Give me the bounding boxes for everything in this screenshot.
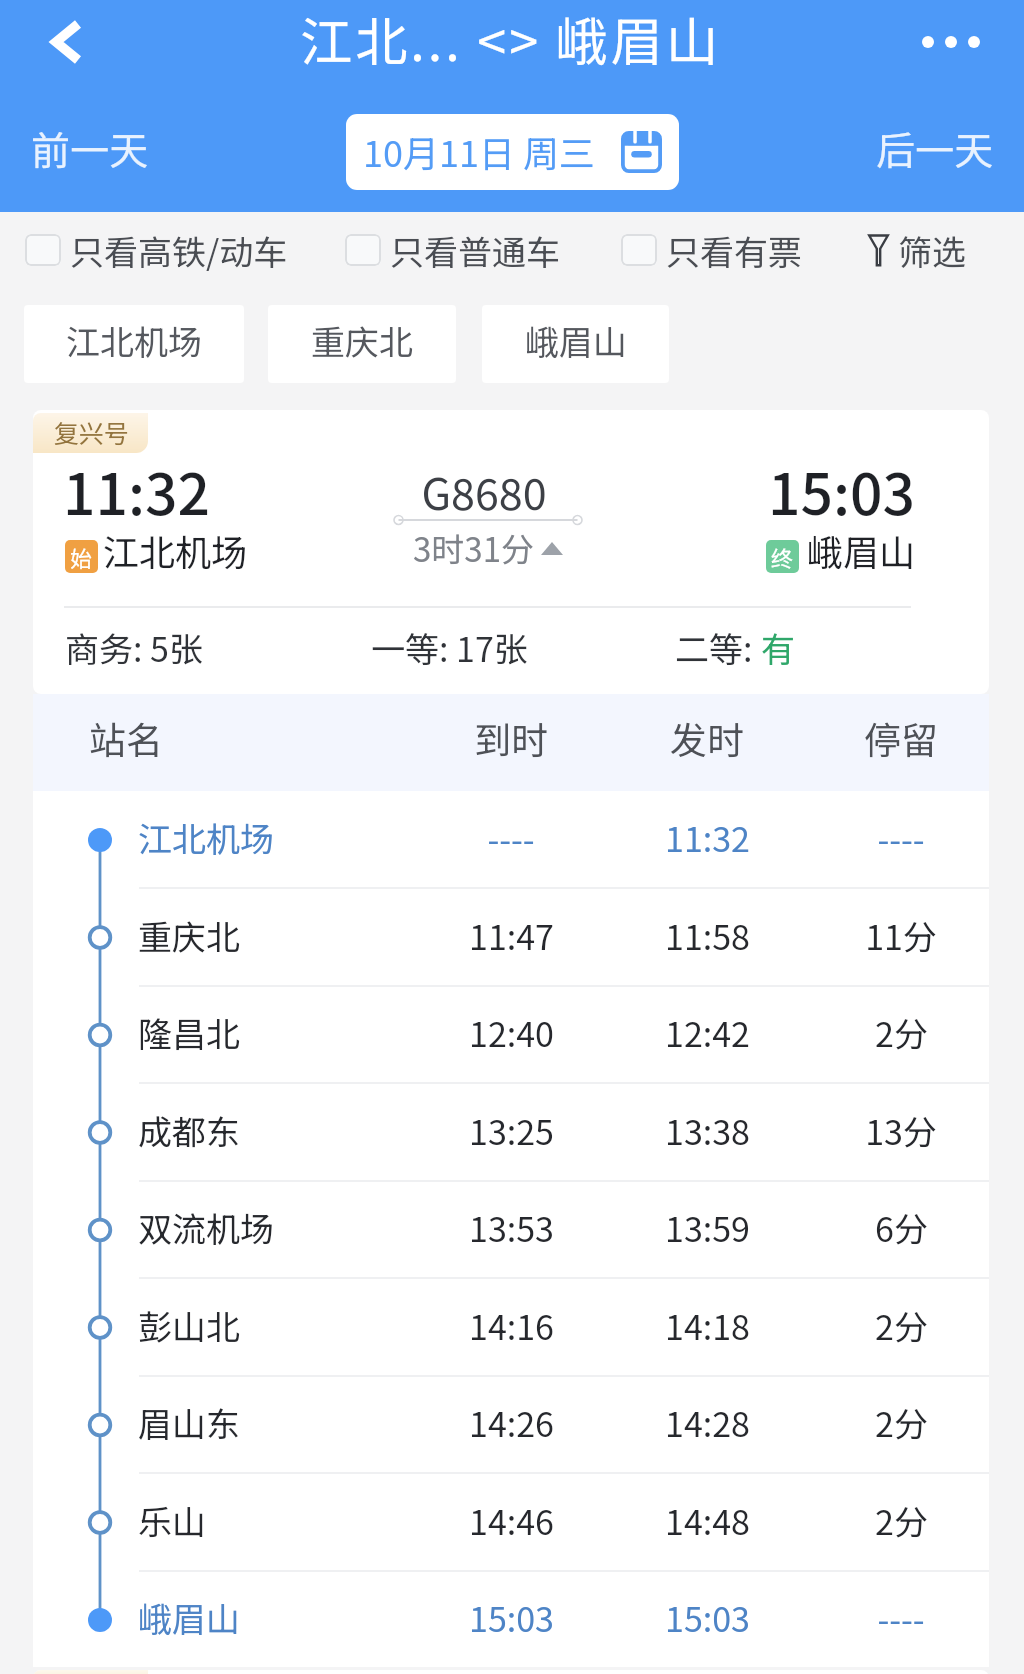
staticText: 6分 [875, 1203, 928, 1249]
staticText: 始 [70, 541, 93, 573]
staticText: 15:03 [768, 449, 915, 526]
button[interactable]: 峨眉山 [33, 1571, 989, 1668]
staticText: 13:38 [665, 1106, 750, 1152]
staticText: 13分 [865, 1106, 937, 1152]
staticText: 只看普通车 [390, 226, 560, 275]
staticText: 江北机场 [103, 524, 248, 572]
staticText: 峨眉山 [525, 316, 627, 365]
staticText: 一等: 17张 [371, 623, 528, 669]
staticText: 双流机场 [138, 1203, 274, 1249]
button[interactable]: 只看高铁/动车 [25, 213, 288, 287]
staticText: 眉山东 [138, 1398, 240, 1444]
staticText: 江北机场 [138, 813, 274, 859]
staticText: 站名 [89, 711, 163, 761]
staticText: 13:53 [469, 1203, 554, 1249]
staticText: 11:32 [63, 449, 210, 526]
staticText: 峨眉山 [807, 524, 916, 572]
staticText: 只看高铁/动车 [70, 226, 288, 275]
staticText: 复兴号 [54, 414, 130, 450]
staticText: 13:25 [469, 1106, 554, 1152]
staticText: 只看有票 [666, 226, 802, 275]
staticText: 14:46 [469, 1496, 554, 1542]
staticText: 乐山 [138, 1496, 206, 1542]
button[interactable]: More options [885, 0, 1009, 84]
staticText: 重庆北 [138, 911, 240, 957]
staticText: ---- [487, 813, 535, 859]
button[interactable]: 后一天 [876, 120, 994, 176]
button[interactable]: 前一天 [31, 120, 149, 176]
button[interactable]: 重庆北 [33, 889, 989, 986]
button[interactable]: 江北机场 [24, 305, 244, 383]
staticText: 14:26 [469, 1398, 554, 1444]
staticText: 12:40 [469, 1008, 554, 1054]
staticText: ---- [877, 1593, 925, 1639]
staticText: 2分 [875, 1008, 928, 1054]
button[interactable]: 只看普通车 [345, 213, 560, 287]
button[interactable]: 10月11日 周三 [346, 114, 679, 190]
staticText: 15:03 [665, 1593, 750, 1639]
button[interactable]: 复兴号 [33, 410, 989, 694]
button[interactable]: 成都东 [33, 1084, 989, 1181]
button[interactable]: 筛选 [868, 213, 966, 287]
staticText: 到时 [474, 711, 548, 761]
button[interactable]: 乐山 [33, 1474, 989, 1571]
staticText: 11分 [865, 911, 937, 957]
staticText: 成都东 [138, 1106, 240, 1152]
staticText: 14:16 [469, 1301, 554, 1347]
staticText: 15:03 [469, 1593, 554, 1639]
staticText: 有 [761, 623, 795, 669]
staticText: 江北机场 [66, 316, 202, 365]
staticText: 发时 [670, 711, 744, 761]
staticText: 江北... <> 峨眉山 [300, 1, 721, 71]
staticText: 3时31分 [413, 524, 534, 572]
staticText: ---- [877, 813, 925, 859]
staticText: 重庆北 [311, 316, 413, 365]
button[interactable]: 眉山东 [33, 1376, 989, 1473]
staticText: G8680 [421, 460, 547, 518]
staticText: 14:28 [665, 1398, 750, 1444]
staticText: 12:42 [665, 1008, 750, 1054]
button[interactable]: 江北机场 [33, 791, 989, 888]
staticText: 后一天 [876, 120, 994, 176]
staticText: 10月11日 周三 [363, 125, 595, 177]
staticText: 11:32 [665, 813, 750, 859]
staticText: 商务: 5张 [65, 623, 203, 669]
staticText: 14:48 [665, 1496, 750, 1542]
staticText: 11:58 [665, 911, 750, 957]
staticText: 11:47 [469, 911, 554, 957]
button[interactable]: 峨眉山 [482, 305, 669, 383]
staticText: 2分 [875, 1301, 928, 1347]
button[interactable]: Back [13, 0, 121, 84]
button[interactable]: 隆昌北 [33, 986, 989, 1083]
staticText: 2分 [875, 1398, 928, 1444]
button[interactable]: 彭山北 [33, 1279, 989, 1376]
staticText: 13:59 [665, 1203, 750, 1249]
staticText: 前一天 [31, 120, 149, 176]
staticText: 筛选 [898, 226, 966, 275]
button[interactable]: 只看有票 [621, 213, 802, 287]
staticText: 14:18 [665, 1301, 750, 1347]
button[interactable]: 重庆北 [268, 305, 456, 383]
staticText: 峨眉山 [138, 1593, 240, 1639]
staticText: 终 [771, 541, 794, 573]
staticText: 彭山北 [138, 1301, 240, 1347]
staticText: 停留 [864, 711, 938, 761]
staticText: 2分 [875, 1496, 928, 1542]
staticText: 隆昌北 [138, 1008, 240, 1054]
staticText: 二等: [675, 623, 761, 669]
button[interactable]: 双流机场 [33, 1181, 989, 1278]
